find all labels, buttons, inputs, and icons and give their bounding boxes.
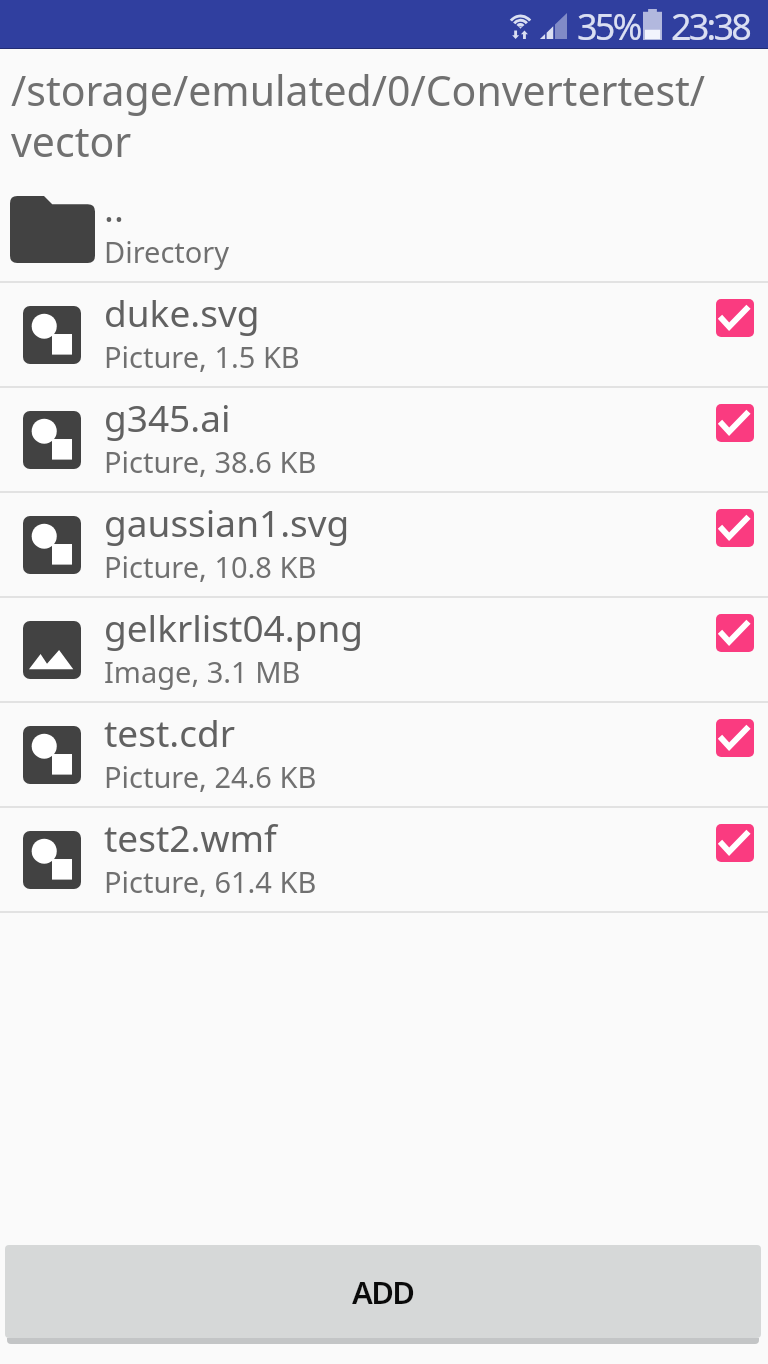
button[interactable]: duke.svg (0, 283, 768, 386)
staticText: Picture, 10.8 KB (104, 547, 317, 586)
staticText: Picture, 38.6 KB (104, 442, 317, 481)
button[interactable]: test.cdr (0, 703, 768, 806)
staticText: Picture, 24.6 KB (104, 757, 317, 796)
button[interactable]: Selected (685, 703, 768, 806)
button[interactable]: Selected (685, 598, 768, 701)
staticText: Directory (104, 232, 230, 271)
staticText: Image, 3.1 MB (104, 652, 301, 691)
button[interactable]: test2.wmf (0, 808, 768, 911)
other: Signal strength (540, 13, 567, 39)
staticText: test.cdr (104, 707, 236, 757)
staticText: ADD (352, 1271, 414, 1313)
staticText: duke.svg (104, 287, 260, 337)
button[interactable]: Selected (685, 283, 768, 386)
staticText: Picture, 1.5 KB (104, 337, 300, 376)
button[interactable]: Selected (685, 388, 768, 491)
button[interactable]: gaussian1.svg (0, 493, 768, 596)
staticText: gaussian1.svg (104, 497, 350, 547)
other: Battery (643, 9, 662, 40)
staticText: gelkrlist04.png (104, 602, 363, 652)
staticText: Picture, 61.4 KB (104, 862, 317, 901)
button[interactable]: ADD (5, 1245, 761, 1338)
staticText: .. (104, 182, 124, 232)
staticText: 35% (577, 2, 640, 51)
staticText: g345.ai (104, 392, 231, 442)
staticText: 23:38 (671, 2, 750, 51)
other: Wi-Fi (509, 12, 532, 39)
button[interactable]: g345.ai (0, 388, 768, 491)
button[interactable]: Selected (685, 493, 768, 596)
button[interactable]: Selected (685, 808, 768, 911)
staticText: test2.wmf (104, 812, 277, 862)
button[interactable]: .. (0, 178, 768, 281)
button[interactable]: gelkrlist04.png (0, 598, 768, 701)
staticText: /storage/emulated/0/Convertertest/ vecto… (11, 62, 706, 169)
